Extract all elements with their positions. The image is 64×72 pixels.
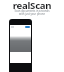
staticText: Scan documents in seconds <box>0 9 64 13</box>
button[interactable]: New scan <box>25 26 30 28</box>
staticText: with just your phone <box>0 12 64 16</box>
staticText: realScan <box>0 0 64 12</box>
